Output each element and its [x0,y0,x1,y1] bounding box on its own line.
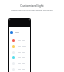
button[interactable] [12,51,29,54]
button[interactable] [12,39,29,42]
staticText: Customized light [20,4,44,8]
button[interactable] [12,45,29,48]
staticText: Define light on your own device and spac… [11,9,53,12]
button[interactable] [12,62,29,65]
button[interactable] [12,56,29,59]
button[interactable] [12,68,29,71]
button[interactable] [10,31,29,34]
